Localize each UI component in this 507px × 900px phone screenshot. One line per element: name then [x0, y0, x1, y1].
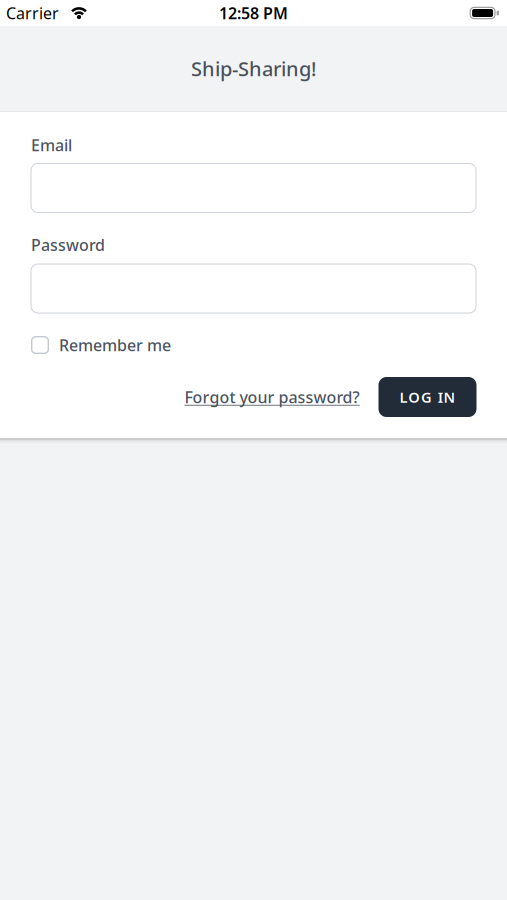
staticText: Forgot your password?: [184, 386, 359, 408]
staticText: Ship-Sharing!: [191, 55, 316, 82]
staticText: LOG IN: [399, 387, 455, 407]
staticText: 12:58 PM: [219, 2, 288, 24]
staticText: Email: [31, 134, 72, 156]
button[interactable]: Remember me: [31, 334, 171, 356]
staticText: Remember me: [59, 334, 171, 356]
staticText: Carrier: [6, 2, 59, 24]
button[interactable]: Password: [30, 263, 476, 313]
button[interactable]: Email: [30, 163, 476, 213]
button[interactable]: LOG IN: [378, 377, 476, 417]
button[interactable]: Forgot your password?: [184, 386, 359, 408]
staticText: Password: [31, 234, 105, 255]
